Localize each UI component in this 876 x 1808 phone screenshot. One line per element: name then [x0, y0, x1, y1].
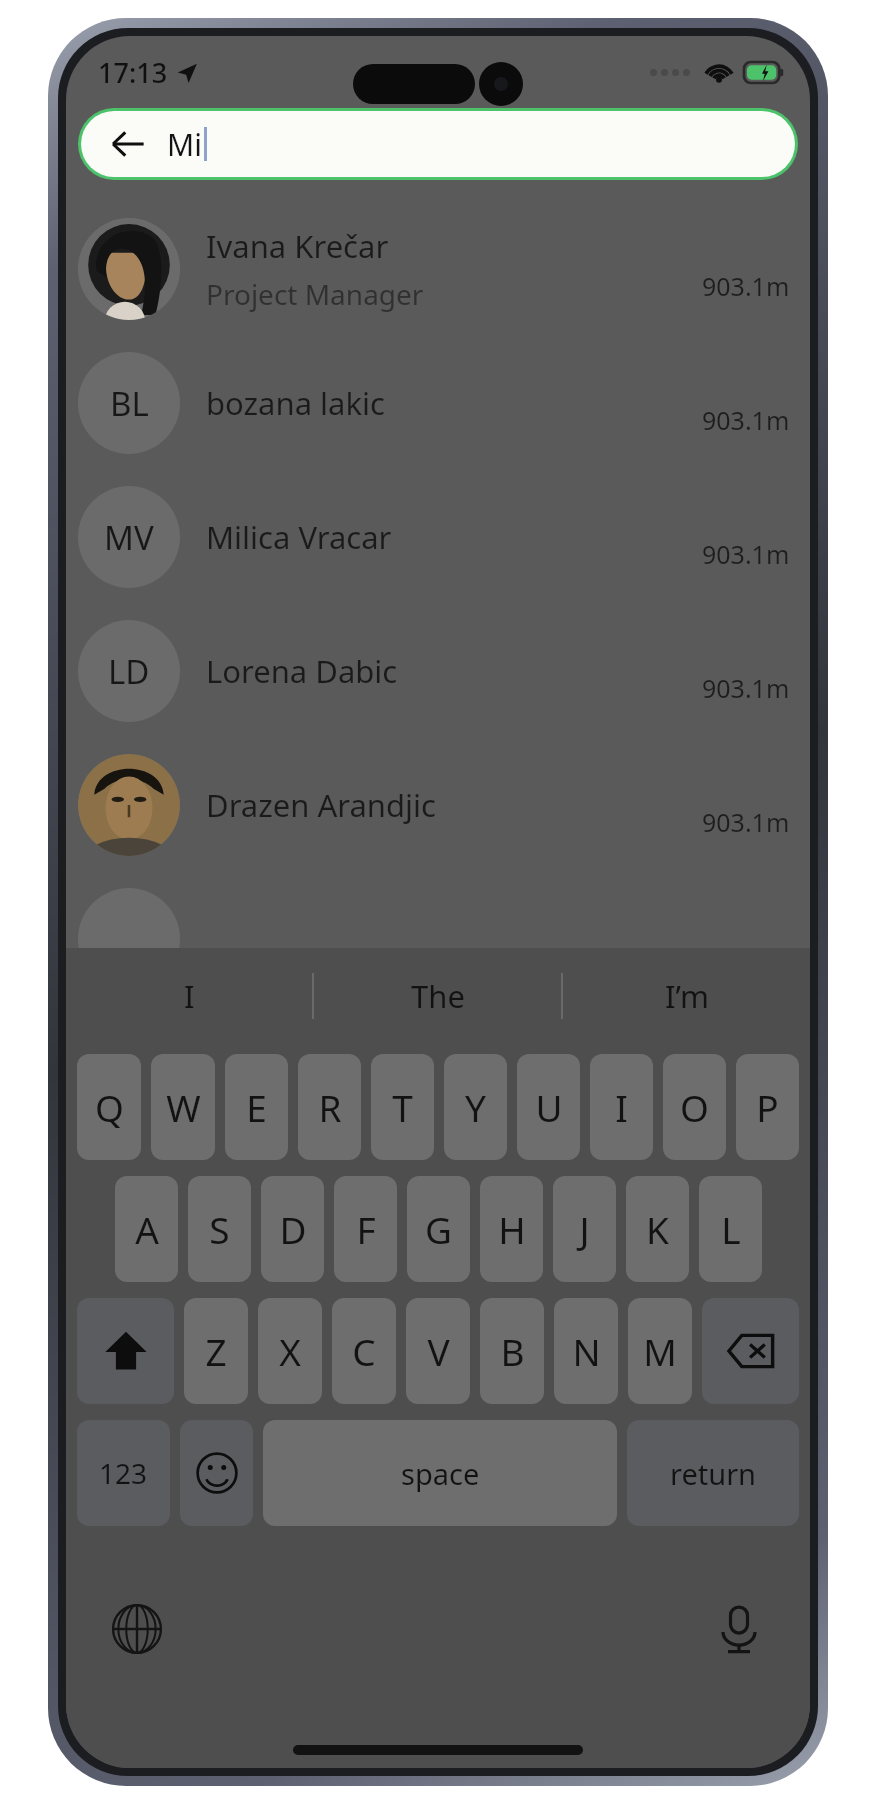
staticText: 903.1m: [702, 537, 790, 571]
button[interactable]: J: [553, 1176, 616, 1282]
staticText: space: [401, 1454, 480, 1493]
staticText: I: [184, 975, 195, 1017]
button[interactable]: I: [66, 948, 312, 1044]
staticText: 903.1m: [702, 269, 790, 303]
button[interactable]: T: [371, 1054, 434, 1160]
button[interactable]: A: [115, 1176, 178, 1282]
button[interactable]: Shift: [77, 1298, 174, 1404]
button[interactable]: M: [628, 1298, 692, 1404]
staticText: Project Manager: [206, 275, 424, 313]
button[interactable]: P: [736, 1054, 799, 1160]
staticText: Milica Vracar: [206, 516, 392, 558]
staticText: return: [670, 1454, 757, 1493]
staticText: LD: [108, 649, 150, 694]
button[interactable]: MV: [66, 470, 810, 604]
button[interactable]: Ivana Krečar: [66, 202, 810, 336]
staticText: Ivana Krečar: [206, 225, 389, 267]
button[interactable]: Change keyboard language: [100, 1592, 174, 1666]
button[interactable]: Back: [105, 121, 151, 167]
staticText: Z: [205, 1326, 227, 1376]
staticText: D: [279, 1204, 307, 1254]
staticText: 903.1m: [702, 671, 790, 705]
button[interactable]: S: [188, 1176, 251, 1282]
button[interactable]: R: [298, 1054, 361, 1160]
staticText: F: [356, 1204, 376, 1254]
button[interactable]: 123: [77, 1420, 170, 1526]
staticText: R: [318, 1082, 342, 1132]
button[interactable]: Q: [77, 1054, 141, 1160]
button[interactable]: L: [699, 1176, 762, 1282]
staticText: B: [500, 1326, 525, 1376]
button[interactable]: N: [554, 1298, 618, 1404]
staticText: O: [680, 1082, 709, 1132]
button[interactable]: Drazen Arandjic: [66, 738, 810, 872]
staticText: 123: [99, 1454, 148, 1492]
button[interactable]: LD: [66, 604, 810, 738]
staticText: 903.1m: [702, 805, 790, 839]
button[interactable]: [66, 872, 810, 1006]
staticText: W: [166, 1082, 201, 1132]
button[interactable]: space: [263, 1420, 617, 1526]
button[interactable]: return: [627, 1420, 799, 1526]
button[interactable]: K: [626, 1176, 689, 1282]
button[interactable]: O: [663, 1054, 726, 1160]
staticText: H: [498, 1204, 526, 1254]
button[interactable]: I: [590, 1054, 653, 1160]
staticText: Mi: [167, 124, 202, 165]
button[interactable]: Backspace: [702, 1298, 799, 1404]
staticText: A: [135, 1204, 159, 1254]
staticText: K: [646, 1204, 669, 1254]
button[interactable]: Dictation: [702, 1592, 776, 1666]
button[interactable]: Z: [184, 1298, 248, 1404]
button[interactable]: U: [517, 1054, 580, 1160]
staticText: I’m: [665, 975, 709, 1017]
staticText: C: [352, 1326, 376, 1376]
button[interactable]: Emoji: [180, 1420, 253, 1526]
button[interactable]: X: [258, 1298, 322, 1404]
staticText: U: [535, 1082, 563, 1132]
staticText: Q: [95, 1082, 124, 1132]
button[interactable]: BL: [66, 336, 810, 470]
staticText: N: [572, 1326, 601, 1376]
button[interactable]: E: [225, 1054, 288, 1160]
button[interactable]: Y: [444, 1054, 507, 1160]
button[interactable]: F: [334, 1176, 397, 1282]
staticText: P: [756, 1082, 779, 1132]
button[interactable]: W: [151, 1054, 215, 1160]
button[interactable]: The: [314, 948, 561, 1044]
button[interactable]: G: [407, 1176, 470, 1282]
staticText: Drazen Arandjic: [206, 784, 436, 826]
button[interactable]: V: [406, 1298, 470, 1404]
staticText: BL: [110, 381, 149, 426]
staticText: Y: [465, 1082, 486, 1132]
button[interactable]: I’m: [563, 948, 810, 1044]
button[interactable]: B: [480, 1298, 544, 1404]
staticText: G: [425, 1204, 452, 1254]
staticText: L: [721, 1204, 741, 1254]
staticText: E: [246, 1082, 267, 1132]
staticText: The: [411, 975, 465, 1017]
staticText: Lorena Dabic: [206, 650, 398, 692]
staticText: 903.1m: [702, 403, 790, 437]
staticText: X: [279, 1326, 301, 1376]
button[interactable]: D: [261, 1176, 324, 1282]
button[interactable]: C: [332, 1298, 396, 1404]
staticText: J: [579, 1204, 590, 1254]
staticText: S: [209, 1204, 230, 1254]
staticText: MV: [104, 515, 154, 560]
button[interactable]: H: [480, 1176, 543, 1282]
staticText: 17:13: [98, 54, 168, 91]
staticText: M: [643, 1326, 677, 1376]
staticText: V: [427, 1326, 450, 1376]
staticText: T: [392, 1082, 413, 1132]
staticText: I: [615, 1082, 628, 1132]
button[interactable]: Back: [81, 111, 795, 177]
staticText: bozana lakic: [206, 382, 385, 424]
